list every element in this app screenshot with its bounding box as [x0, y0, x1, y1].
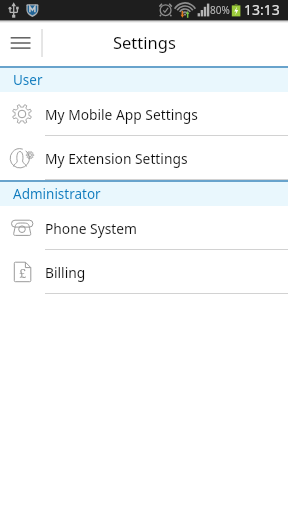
button[interactable]: Phone System — [0, 206, 288, 250]
staticText: 80% — [210, 3, 230, 17]
staticText: Billing — [45, 263, 86, 282]
staticText: Settings — [113, 31, 176, 53]
button[interactable]: Menu — [0, 20, 42, 66]
button[interactable]: My Extension Settings — [0, 136, 288, 180]
button[interactable]: £ — [0, 250, 288, 294]
staticText: £ — [19, 264, 27, 282]
staticText: Phone System — [45, 219, 137, 238]
staticText: 13:13 — [244, 0, 280, 19]
staticText: My Mobile App Settings — [45, 105, 198, 124]
button[interactable]: My Mobile App Settings — [0, 92, 288, 136]
staticText: User — [13, 71, 43, 89]
staticText: My Extension Settings — [45, 149, 188, 168]
staticText: Administrator — [13, 185, 101, 203]
